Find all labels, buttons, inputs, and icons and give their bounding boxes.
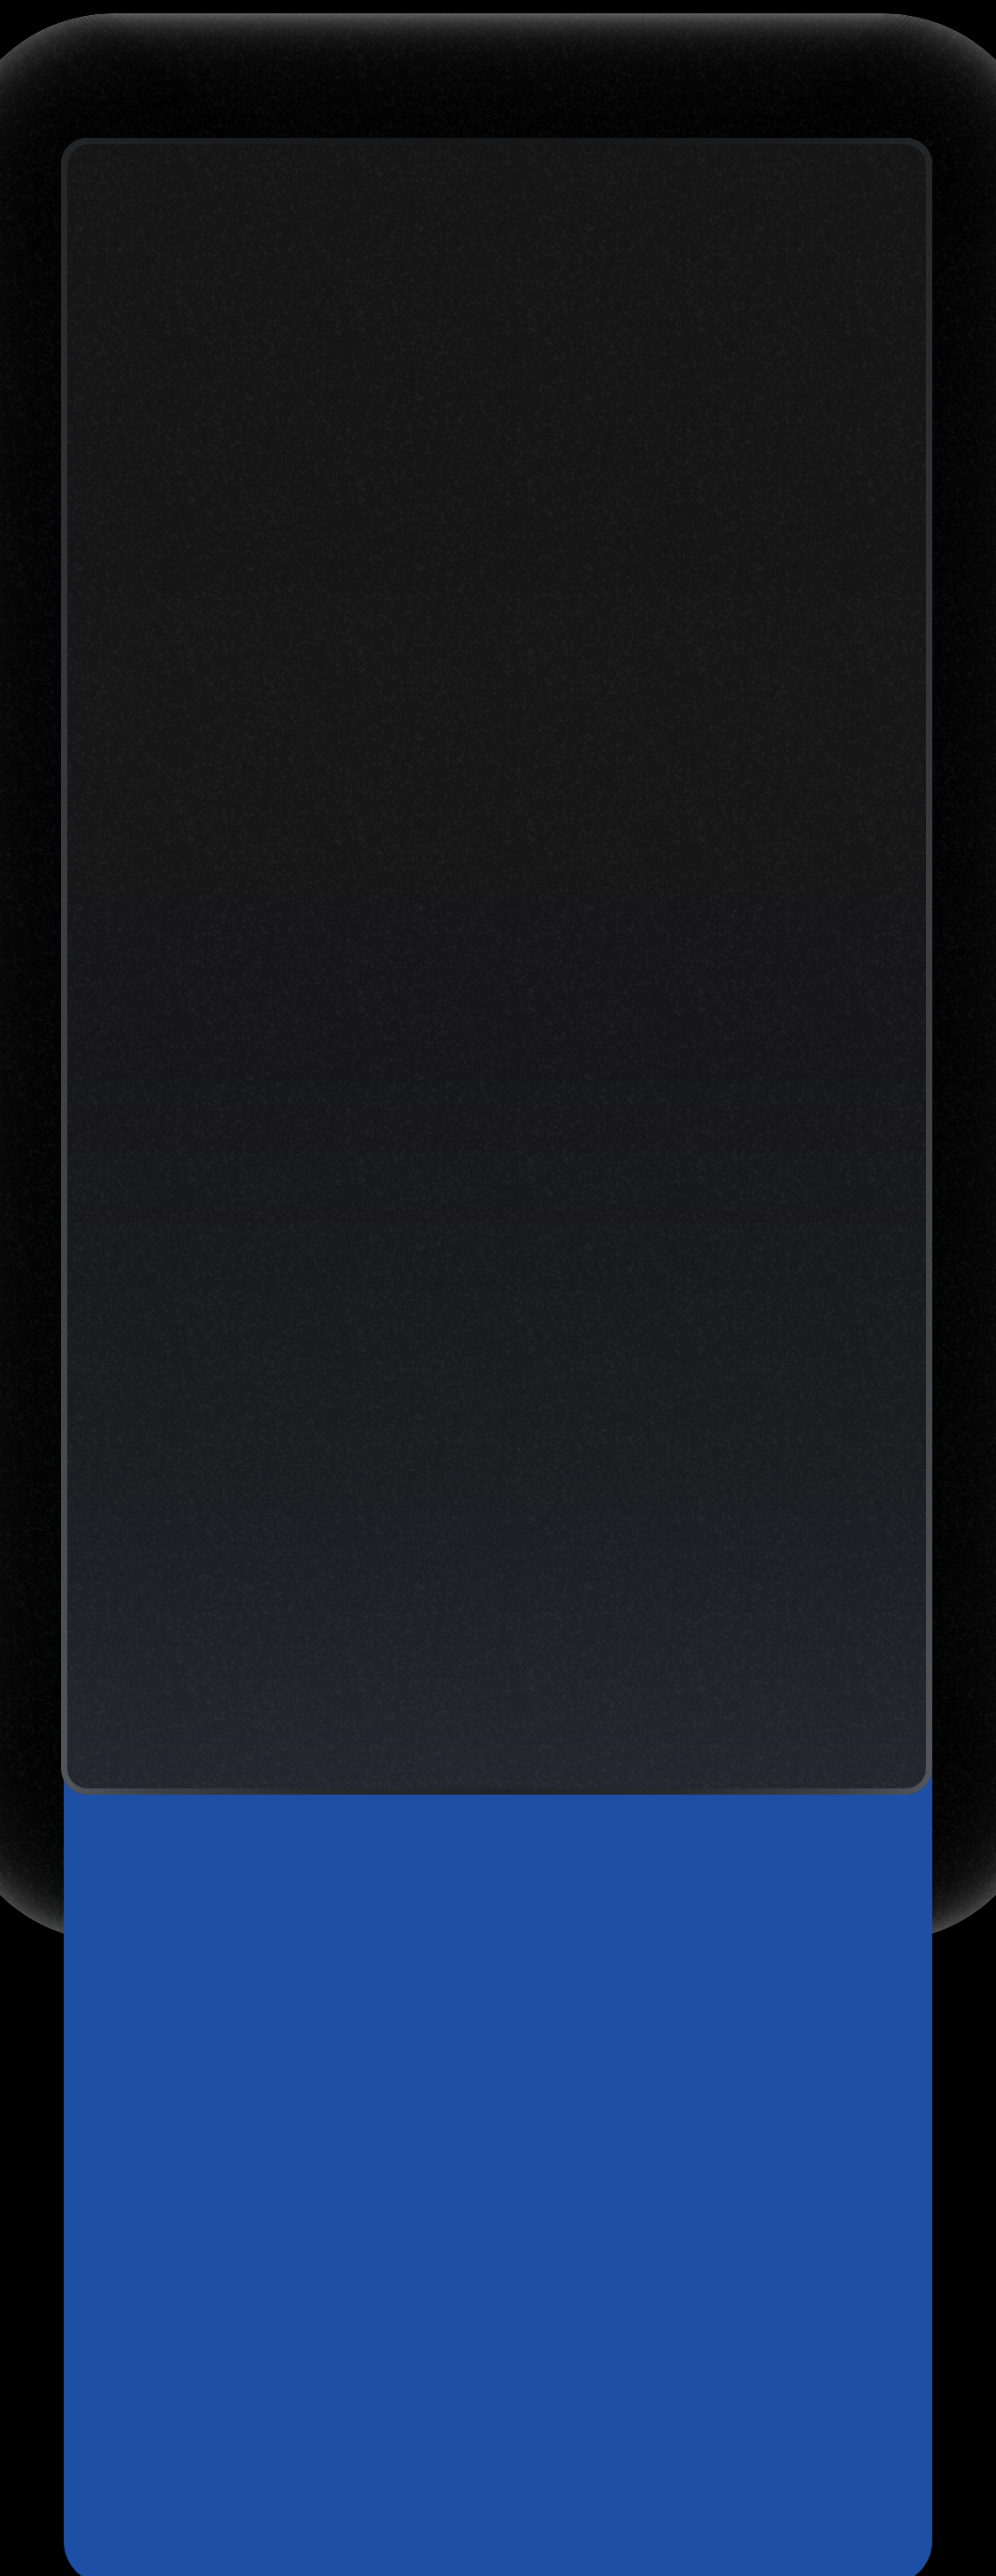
button[interactable]: Close overlay [0, 0, 996, 2576]
button[interactable]: Content sheet [61, 138, 932, 1795]
